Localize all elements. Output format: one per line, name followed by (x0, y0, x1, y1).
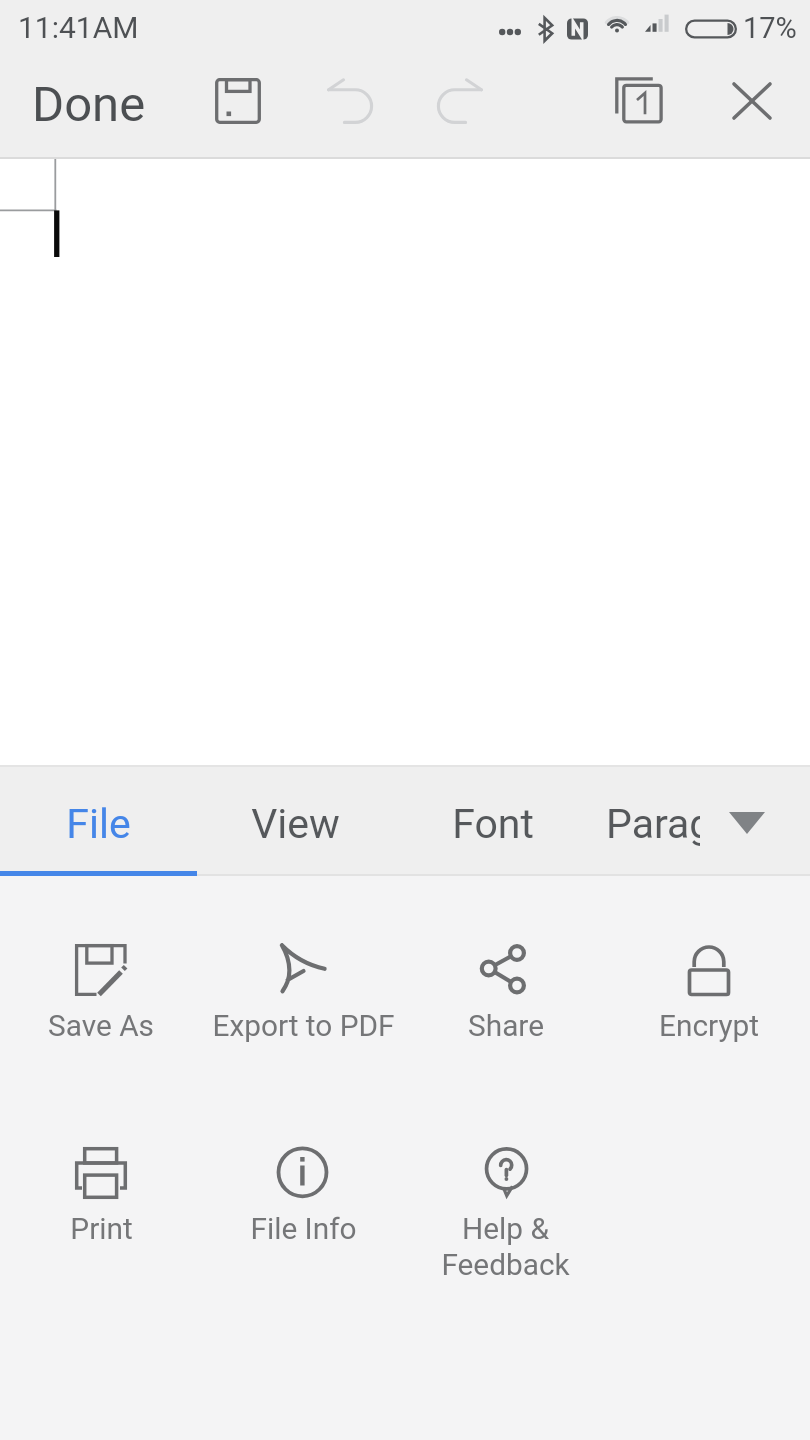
button[interactable]: Font (394, 767, 591, 871)
staticText: File Info (250, 1211, 357, 1246)
button[interactable]: File Info (202, 1147, 404, 1246)
button[interactable]: File (0, 767, 197, 871)
staticText: 17% (743, 11, 797, 45)
button[interactable]: Save As (0, 944, 202, 1043)
staticText: Done (32, 76, 146, 133)
button[interactable]: More tabs (710, 767, 810, 871)
button[interactable]: View (197, 767, 394, 871)
button[interactable]: Share (404, 944, 607, 1043)
button[interactable]: Export to PDF (202, 944, 404, 1043)
staticText: Font (452, 800, 534, 848)
button[interactable]: Help & Feedback (404, 1147, 607, 1282)
staticText: View (251, 800, 340, 848)
button[interactable]: Print (0, 1147, 202, 1246)
staticText: File (66, 800, 131, 848)
button[interactable] (591, 767, 810, 871)
button[interactable]: Encrypt (607, 944, 810, 1043)
staticText: Print (70, 1211, 133, 1246)
staticText: Save As (48, 1008, 154, 1043)
button[interactable]: Redo (412, 57, 508, 159)
staticText: Share (468, 1008, 544, 1043)
button[interactable]: Undo (302, 57, 398, 159)
button[interactable]: Pages (591, 57, 687, 159)
staticText: Export to PDF (212, 1008, 395, 1043)
staticText: Encrypt (659, 1008, 759, 1043)
button[interactable]: Close (704, 57, 800, 159)
button[interactable]: Save (190, 57, 286, 159)
staticText: 11:41AM (18, 10, 139, 45)
staticText: Parag (606, 800, 700, 848)
button[interactable]: Done (0, 57, 180, 159)
staticText: Help & Feedback (441, 1211, 570, 1282)
